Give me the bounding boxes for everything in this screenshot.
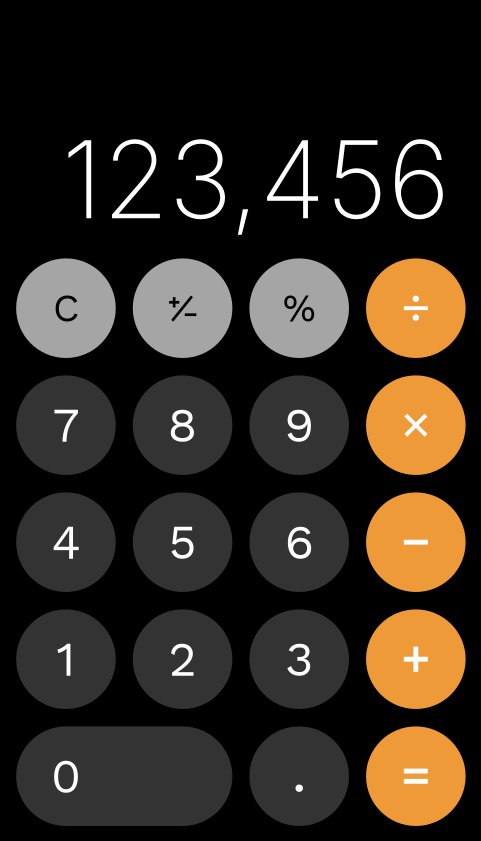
staticText: 7: [52, 397, 79, 453]
staticText: 6: [285, 514, 314, 570]
staticText: C: [53, 286, 79, 331]
button[interactable]: 8: [133, 375, 232, 475]
button[interactable]: 7: [16, 375, 116, 475]
staticText: 2: [169, 631, 197, 687]
button[interactable]: %: [249, 258, 349, 358]
button[interactable]: 3: [249, 609, 349, 709]
button[interactable]: 9: [249, 375, 349, 475]
button[interactable]: 1: [16, 609, 116, 709]
button[interactable]: Minus: [366, 492, 466, 592]
button[interactable]: 4: [16, 492, 116, 592]
staticText: 4: [51, 514, 80, 570]
button[interactable]: Plus minus: [133, 258, 232, 358]
staticText: 1: [56, 631, 75, 687]
button[interactable]: 5: [133, 492, 232, 592]
button[interactable]: Multiply: [366, 375, 466, 475]
button[interactable]: Equals: [366, 726, 466, 826]
staticText: 8: [168, 397, 198, 453]
staticText: 5: [169, 514, 197, 570]
staticText: 0: [51, 748, 81, 804]
staticText: 9: [284, 397, 314, 453]
staticText: %: [283, 286, 316, 331]
button[interactable]: Decimal point: [249, 726, 349, 826]
button[interactable]: Divide: [366, 258, 466, 358]
staticText: 3: [285, 631, 313, 687]
button[interactable]: 0: [16, 726, 232, 826]
button[interactable]: Plus: [366, 609, 466, 709]
staticText: 123,456: [62, 114, 450, 244]
button[interactable]: 2: [133, 609, 232, 709]
button[interactable]: C: [16, 258, 116, 358]
button[interactable]: 6: [249, 492, 349, 592]
